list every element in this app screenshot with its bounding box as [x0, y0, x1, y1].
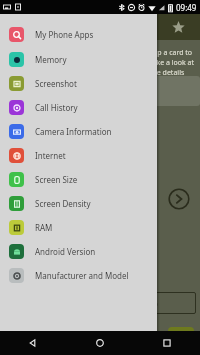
button[interactable]: Internet: [0, 143, 157, 167]
staticText: Call History: [35, 102, 78, 113]
button[interactable]: Screenshot: [0, 71, 157, 95]
staticText: Screen Density: [35, 198, 91, 209]
button[interactable]: Call History: [0, 95, 157, 119]
button[interactable]: Recents: [133, 331, 200, 355]
staticText: Screenshot: [35, 78, 77, 89]
button[interactable]: Android Version: [0, 239, 157, 263]
button[interactable]: Next: [168, 188, 190, 210]
button[interactable]: Favourite: [168, 17, 188, 37]
button[interactable]: Screen Size: [0, 167, 157, 191]
button[interactable]: Back: [0, 331, 66, 355]
button[interactable]: Home: [66, 331, 133, 355]
staticText: Memory: [35, 54, 67, 65]
button[interactable]: Camera Information: [0, 119, 157, 143]
staticText: Camera Information: [35, 126, 112, 137]
staticText: Android Version: [35, 246, 96, 257]
button[interactable]: Screen Density: [0, 191, 157, 215]
button[interactable]: My Phone Apps: [0, 22, 157, 47]
staticText: RAM: [35, 222, 53, 233]
button[interactable]: RAM: [0, 215, 157, 239]
button[interactable]: Download: [168, 327, 194, 353]
staticText: Internet: [35, 150, 66, 161]
button[interactable]: Memory: [0, 47, 157, 71]
staticText: My Phone Apps: [35, 29, 94, 40]
staticText: 09:49: [176, 2, 197, 13]
button[interactable]: Manufacturer and Model: [0, 263, 157, 287]
staticText: Manufacturer and Model: [35, 270, 129, 281]
staticText: Tap a card to take a look at the details: [150, 48, 200, 78]
staticText: o: [153, 298, 158, 309]
staticText: Screen Size: [35, 174, 78, 185]
